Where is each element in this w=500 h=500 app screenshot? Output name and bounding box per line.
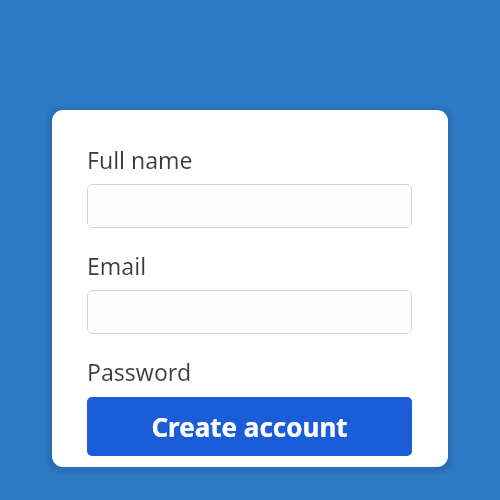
staticText: Password <box>87 356 192 387</box>
staticText: Create account <box>151 409 348 444</box>
staticText: Full name <box>87 144 193 175</box>
staticText: Email <box>87 250 147 281</box>
button[interactable]: Full name input field <box>87 184 412 228</box>
button[interactable]: Email input field <box>87 290 412 334</box>
button[interactable]: Create account <box>87 397 412 456</box>
